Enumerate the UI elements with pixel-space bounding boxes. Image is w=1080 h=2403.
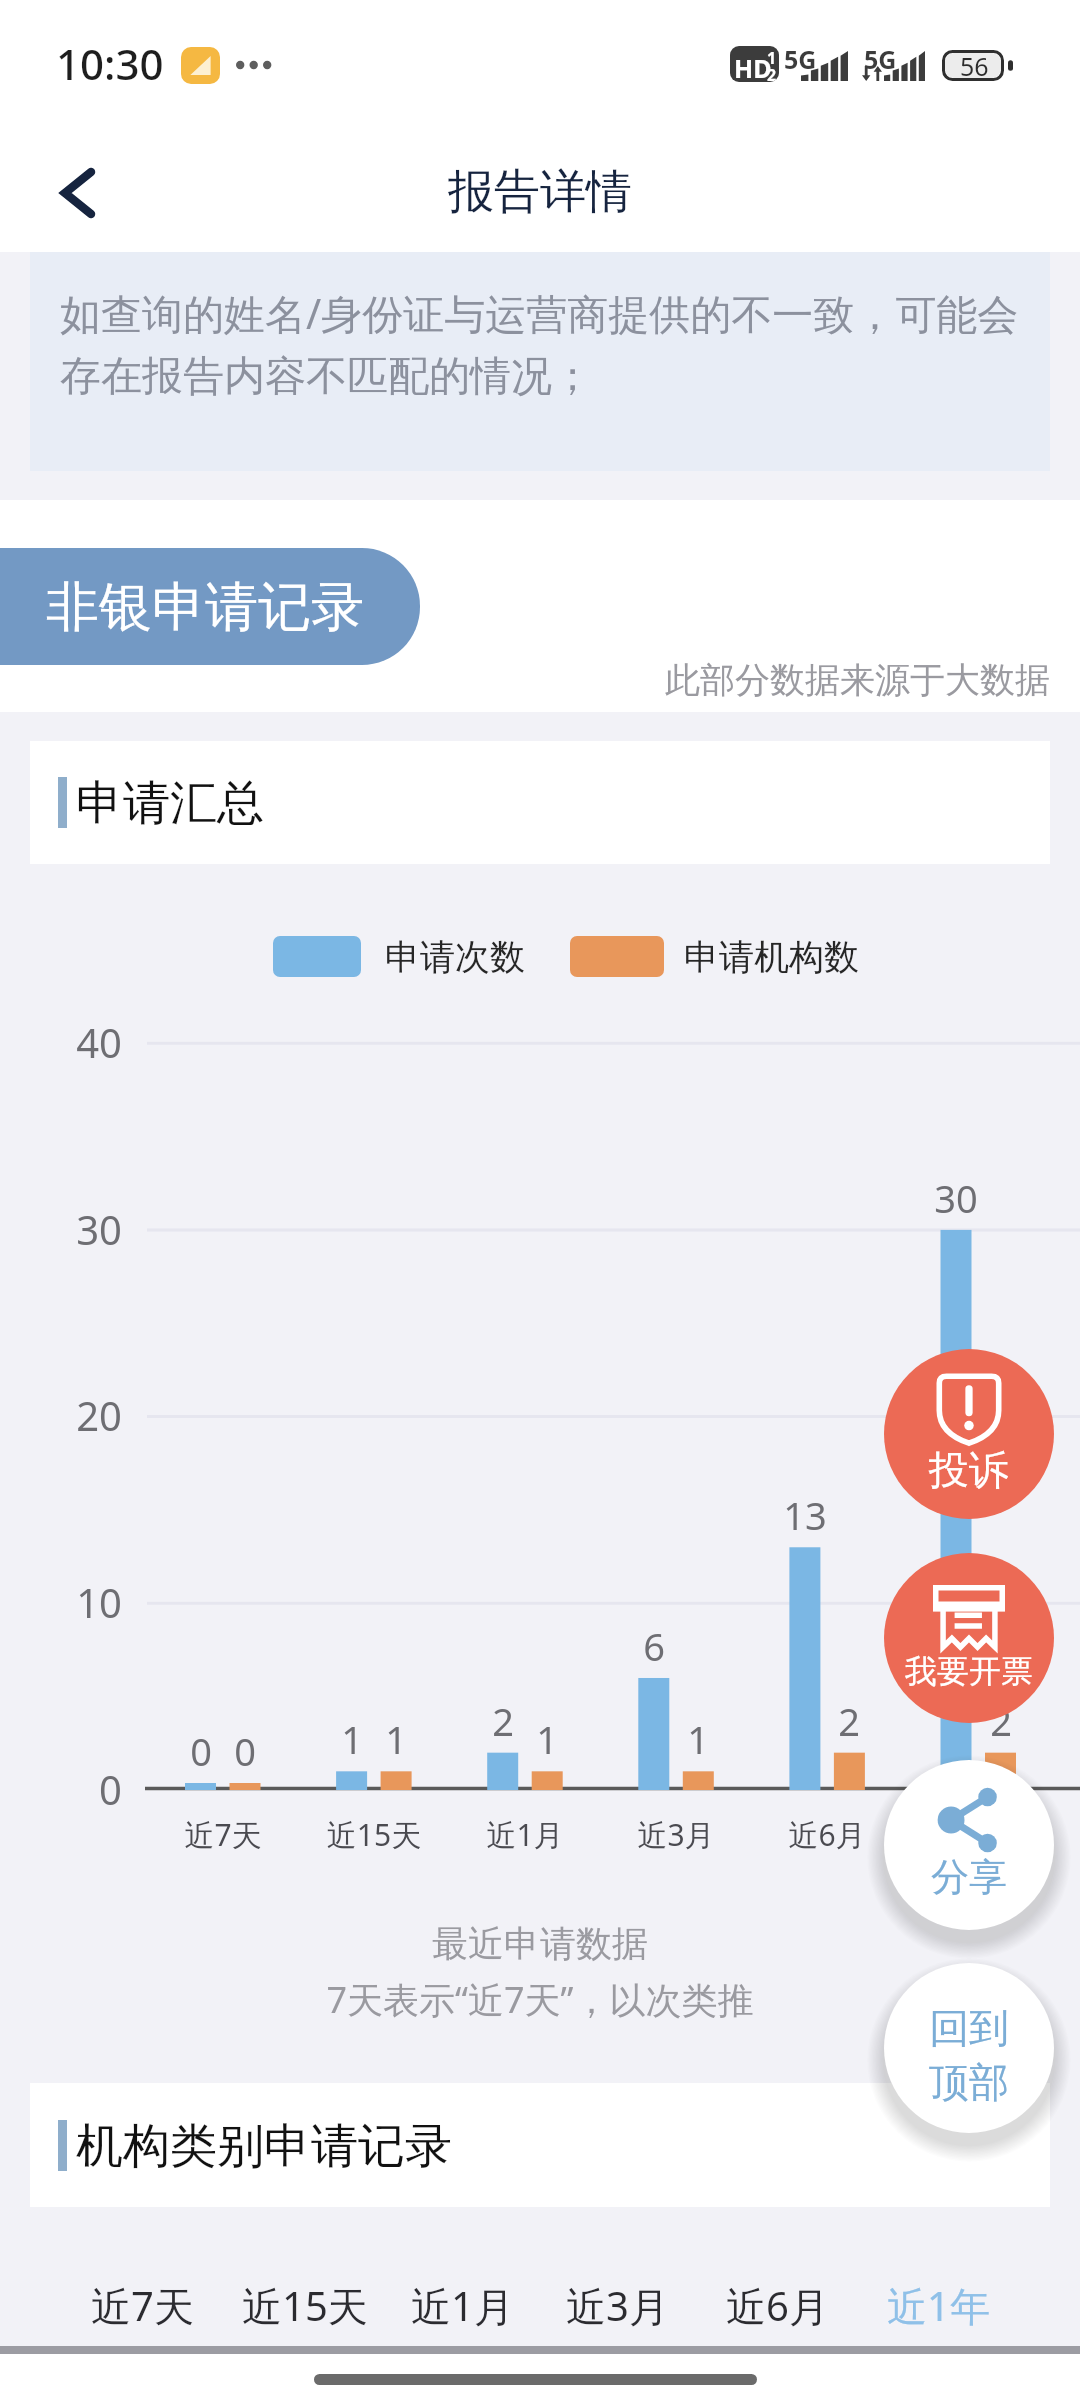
staticText: 近7天 [133,1814,313,1855]
staticText: 1 [492,1713,602,1765]
staticText: 5G [784,42,817,76]
staticText: 20 [60,1388,122,1442]
staticText: 机构类别申请记录 [76,2117,452,2176]
staticText: 近1月 [411,2278,514,2333]
staticText: 如查询的姓名/身份证与运营商提供的不一致，可能会 存在报告内容不匹配的情况； [60,285,1019,402]
staticText: 0 [146,1725,256,1777]
staticText: 顶部 [929,2057,1009,2107]
button[interactable]: 分享 [884,1760,1054,1930]
staticText: 1 [643,1713,753,1765]
staticText: 近6月 [726,2278,829,2333]
staticText: 1 [297,1713,407,1765]
staticText: 0 [60,1762,122,1816]
staticText: 40 [60,1015,122,1069]
staticText: 56 [960,49,989,80]
button[interactable]: 近1年 [843,2207,1033,2346]
staticText: 5G [864,42,897,76]
staticText: 近1年 [888,1814,1068,1855]
staticText: 回到 [929,2003,1009,2053]
staticText: 申请次数 [385,935,525,979]
staticText: 0 [190,1725,300,1777]
staticText: HD [734,51,772,82]
button[interactable]: 近3月 [522,2207,712,2346]
button[interactable]: 近6月 [682,2207,872,2346]
staticText: 2 [767,64,777,82]
staticText: 2 [946,1695,1056,1747]
staticText: 2 [794,1695,904,1747]
staticText: 申请机构数 [684,935,859,979]
staticText: 分享 [931,1853,1007,1901]
button[interactable]: 投诉 [884,1349,1054,1519]
staticText: 最近申请数据 [0,1921,1080,1966]
staticText: 13 [750,1489,860,1541]
button[interactable]: Back [34,149,122,237]
button[interactable]: 我要开票 [884,1553,1054,1723]
staticText: 近15天 [242,2278,368,2333]
staticText: 非银申请记录 [46,574,364,641]
staticText: 10 [60,1575,122,1629]
staticText: 1 [341,1713,451,1765]
button[interactable]: 近1月 [367,2207,557,2346]
staticText: 申请汇总 [76,774,264,833]
staticText: 报告详情 [448,163,632,221]
staticText: 近1月 [435,1814,615,1855]
button[interactable]: 回到 [884,1963,1054,2133]
staticText: 投诉 [929,1445,1009,1495]
staticText: 30 [60,1202,122,1256]
staticText: 30 [901,1172,1011,1224]
staticText: 近6月 [737,1814,917,1855]
staticText: 我要开票 [905,1651,1033,1691]
staticText: 2 [448,1695,558,1747]
staticText: 近3月 [566,2278,669,2333]
button[interactable]: 近15天 [210,2207,400,2346]
button[interactable]: 近7天 [47,2207,237,2346]
staticText: 近3月 [586,1814,766,1855]
staticText: 近7天 [91,2278,194,2333]
staticText: 1 [767,47,777,69]
staticText: 6 [599,1620,709,1672]
staticText: 10:30 [56,35,164,92]
button[interactable]: 非银申请记录 [0,548,420,665]
staticText: 近1年 [887,2278,990,2333]
staticText: 此部分数据来源于大数据 [665,658,1050,702]
staticText: 近15天 [284,1814,464,1855]
staticText: 7天表示“近7天”，以次类推 [0,1975,1080,2024]
